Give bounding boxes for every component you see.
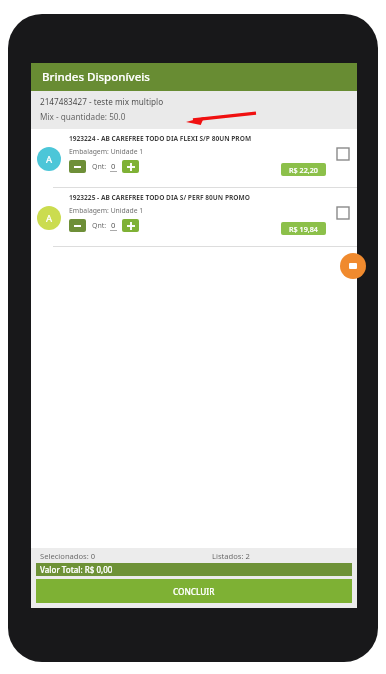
button[interactable]: Diminuir <box>69 160 86 173</box>
button[interactable]: Diminuir <box>69 219 86 232</box>
button[interactable]: Filtrar <box>340 253 366 279</box>
staticText: A <box>46 212 53 225</box>
staticText: Brindes Disponíveis <box>42 69 150 85</box>
button[interactable]: A <box>31 129 357 187</box>
staticText: 0 <box>111 161 116 171</box>
staticText: Qnt: <box>92 221 107 231</box>
staticText: 0 <box>111 220 116 230</box>
staticText: R$ 19,84 <box>289 224 318 234</box>
staticText: Listados: 2 <box>212 551 250 561</box>
staticText: R$ 22,20 <box>289 165 318 175</box>
staticText: CONCLUIR <box>173 586 215 597</box>
staticText: A <box>46 153 53 166</box>
button[interactable]: CONCLUIR <box>36 579 352 603</box>
staticText: Valor Total: R$ 0,00 <box>40 564 113 575</box>
button[interactable]: Selecionar item <box>337 207 349 219</box>
staticText: Mix - quantidade: 50.0 <box>40 111 126 122</box>
staticText: 2147483427 - teste mix multiplo <box>40 96 164 107</box>
button[interactable]: A <box>31 188 357 246</box>
staticText: 1923225 - AB CAREFREE TODO DIA S/ PERF 8… <box>69 193 250 202</box>
button[interactable]: Aumentar <box>122 160 139 173</box>
staticText: Qnt: <box>92 162 107 172</box>
staticText: Embalagem: Unidade 1 <box>69 147 144 156</box>
button[interactable]: Selecionar item <box>337 148 349 160</box>
button[interactable]: Brindes Disponíveis <box>31 63 357 91</box>
button[interactable]: Aumentar <box>122 219 139 232</box>
staticText: Selecionados: 0 <box>40 551 96 561</box>
staticText: Embalagem: Unidade 1 <box>69 206 144 215</box>
staticText: 1923224 - AB CAREFREE TODO DIA FLEXI S/P… <box>69 134 252 143</box>
